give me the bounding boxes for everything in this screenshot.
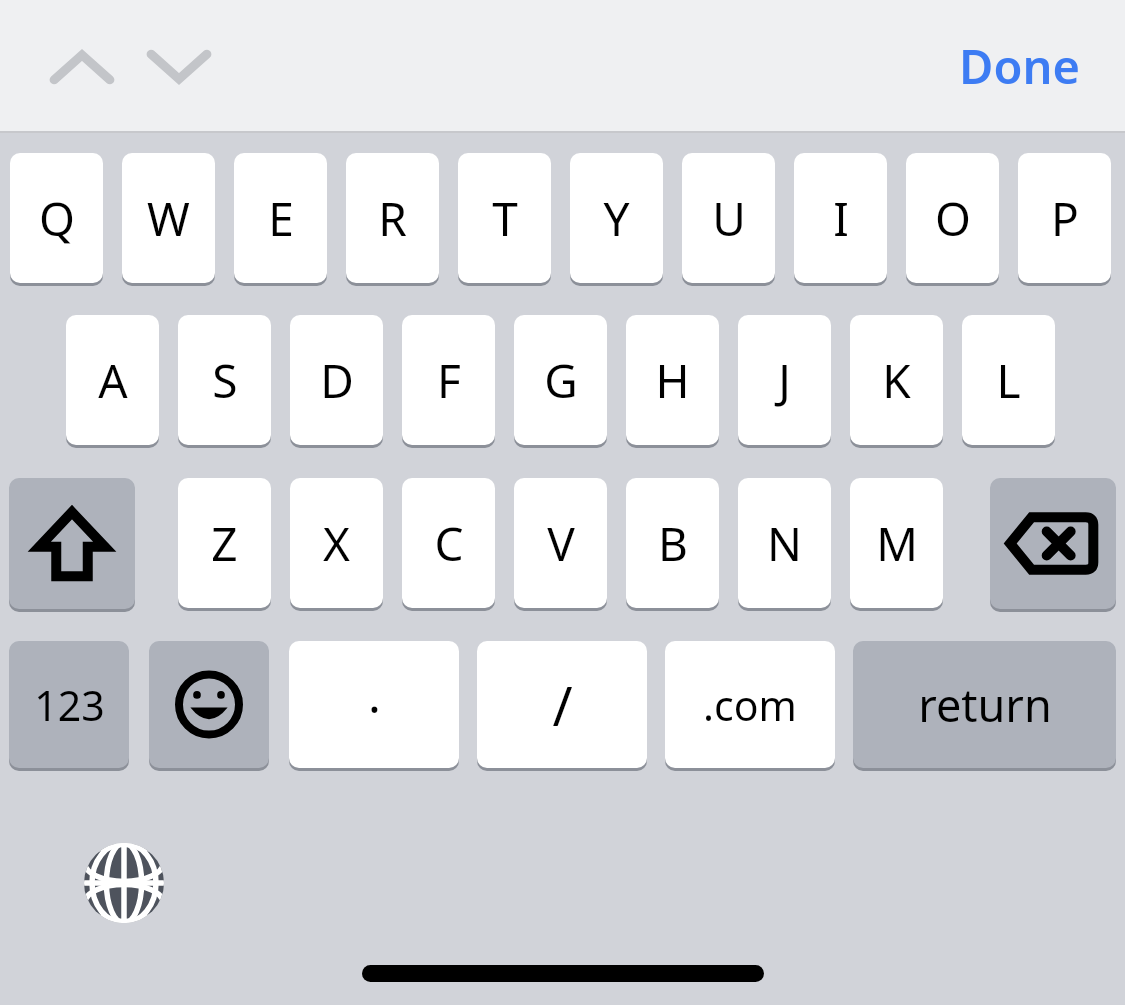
button[interactable]: 123 [9, 641, 129, 768]
staticText: V [547, 512, 575, 575]
staticText: I [833, 187, 849, 250]
button[interactable]: .com [665, 641, 835, 768]
button[interactable]: D [290, 315, 383, 445]
button[interactable]: K [850, 315, 943, 445]
staticText: Q [39, 187, 75, 250]
staticText: .com [703, 677, 797, 733]
button[interactable]: V [514, 478, 607, 608]
button[interactable]: N [738, 478, 831, 608]
staticText: D [320, 349, 354, 412]
button[interactable]: I [794, 153, 887, 283]
staticText: T [492, 187, 518, 250]
staticText: E [268, 187, 294, 250]
button[interactable]: Done [935, 22, 1103, 110]
button[interactable]: W [122, 153, 215, 283]
staticText: L [996, 349, 1021, 412]
staticText: / [552, 668, 573, 742]
button[interactable]: Backspace [990, 478, 1116, 609]
button[interactable]: M [850, 478, 943, 608]
button[interactable]: T [458, 153, 551, 283]
button[interactable]: Q [10, 153, 103, 283]
button[interactable]: Switch keyboard [74, 833, 174, 933]
staticText: G [544, 349, 578, 412]
button[interactable]: R [346, 153, 439, 283]
button[interactable]: Emoji [149, 641, 269, 768]
staticText: S [212, 349, 238, 412]
button[interactable]: B [626, 478, 719, 608]
button[interactable]: X [290, 478, 383, 608]
staticText: 123 [34, 677, 105, 733]
button[interactable]: H [626, 315, 719, 445]
button[interactable]: C [402, 478, 495, 608]
staticText: J [778, 349, 791, 412]
button[interactable]: J [738, 315, 831, 445]
staticText: H [655, 349, 690, 412]
button[interactable]: O [906, 153, 999, 283]
staticText: W [147, 187, 190, 250]
button[interactable]: E [234, 153, 327, 283]
staticText: N [767, 512, 802, 575]
staticText: R [378, 187, 407, 250]
button[interactable]: A [66, 315, 159, 445]
button[interactable]: F [402, 315, 495, 445]
staticText: M [876, 512, 918, 575]
button[interactable]: return [853, 641, 1116, 768]
staticText: Y [603, 187, 630, 250]
button[interactable]: P [1018, 153, 1111, 283]
staticText: X [323, 512, 350, 575]
button[interactable]: Y [570, 153, 663, 283]
staticText: F [437, 349, 461, 412]
staticText: U [712, 187, 746, 250]
button[interactable]: G [514, 315, 607, 445]
button[interactable]: Next field [133, 26, 225, 108]
staticText: . [368, 662, 381, 727]
staticText: return [918, 674, 1052, 735]
button[interactable]: / [477, 641, 647, 768]
button[interactable]: U [682, 153, 775, 283]
staticText: O [935, 187, 971, 250]
staticText: A [98, 349, 128, 412]
button[interactable]: Shift [9, 478, 135, 609]
staticText: Done [959, 34, 1080, 98]
staticText: P [1051, 187, 1079, 250]
button[interactable]: . [289, 641, 459, 768]
staticText: Z [211, 512, 238, 575]
button[interactable]: L [962, 315, 1055, 445]
staticText: B [658, 512, 688, 575]
button[interactable]: Z [178, 478, 271, 608]
staticText: K [882, 349, 911, 412]
button[interactable]: Previous field [36, 26, 128, 108]
staticText: C [434, 512, 464, 575]
button[interactable]: S [178, 315, 271, 445]
